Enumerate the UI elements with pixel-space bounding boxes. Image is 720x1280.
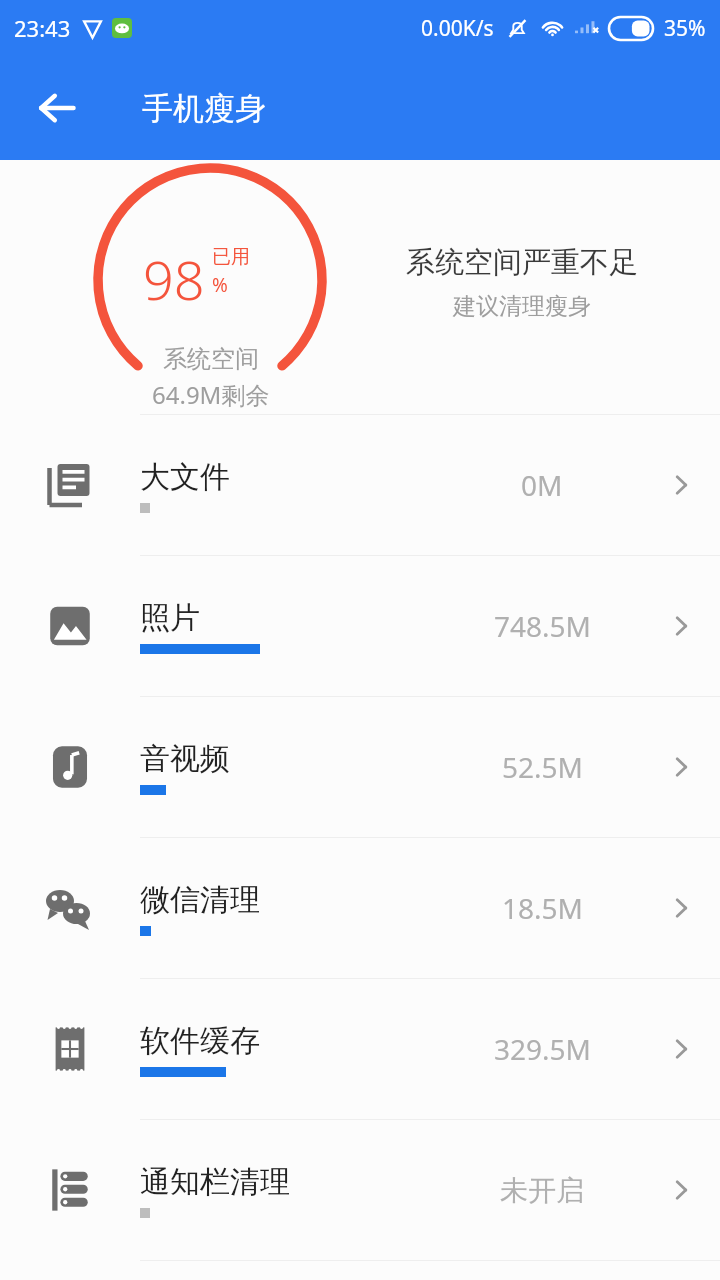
staticText: 照片: [140, 599, 200, 637]
staticText: 未开启: [500, 1173, 584, 1208]
staticText: 748.5M: [494, 607, 591, 645]
button[interactable]: 微信清理: [0, 838, 720, 978]
staticText: 18.5M: [502, 889, 583, 927]
button[interactable]: 软件缓存: [0, 979, 720, 1119]
button[interactable]: 大文件: [0, 415, 720, 555]
staticText: 0M: [521, 466, 563, 504]
button[interactable]: 照片: [0, 556, 720, 696]
staticText: 98: [143, 242, 205, 316]
staticText: %: [212, 272, 228, 298]
staticText: 音视频: [140, 740, 230, 778]
staticText: 已用: [212, 245, 250, 269]
staticText: 23:43: [14, 13, 71, 43]
staticText: 软件缓存: [140, 1022, 260, 1060]
staticText: 微信清理: [140, 881, 260, 919]
staticText: 系统空间: [163, 344, 259, 374]
staticText: 通知栏清理: [140, 1163, 290, 1201]
button[interactable]: 音视频: [0, 697, 720, 837]
staticText: 329.5M: [494, 1030, 591, 1068]
staticText: 系统空间严重不足: [406, 244, 638, 281]
staticText: 64.9M剩余: [152, 378, 270, 411]
staticText: 大文件: [140, 458, 230, 496]
staticText: 手机瘦身: [142, 89, 266, 128]
staticText: 建议清理瘦身: [453, 292, 591, 321]
button[interactable]: Back: [28, 79, 86, 137]
staticText: 35%: [664, 14, 706, 43]
staticText: 0.00K/s: [421, 14, 494, 43]
staticText: 52.5M: [502, 748, 583, 786]
button[interactable]: 通知栏清理: [0, 1120, 720, 1260]
